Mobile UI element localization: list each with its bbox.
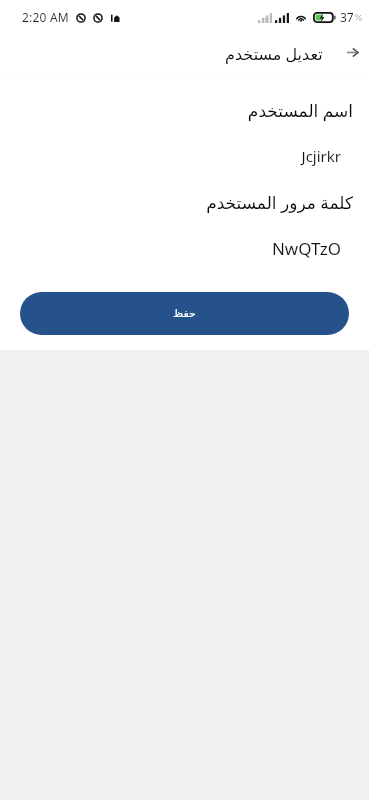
staticText: Jcjirkr — [301, 146, 341, 166]
staticText: تعديل مستخدم — [225, 43, 323, 65]
staticText: 37 — [340, 9, 354, 25]
button[interactable]: NwQTzO — [0, 225, 369, 271]
button[interactable]: حفظ — [20, 292, 349, 335]
staticText: كلمة مرور المستخدم — [206, 191, 353, 214]
staticText: اسم المستخدم — [247, 99, 353, 122]
staticText: حفظ — [173, 307, 196, 320]
staticText: NwQTzO — [271, 237, 341, 260]
staticText: 2:20 AM — [22, 9, 69, 25]
button[interactable]: Jcjirkr — [0, 133, 369, 179]
button[interactable]: Back — [335, 37, 369, 71]
